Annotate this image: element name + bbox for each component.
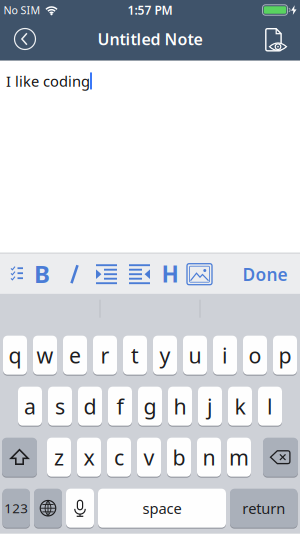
staticText: m: [229, 443, 249, 471]
staticText: space: [142, 498, 181, 518]
staticText: f: [116, 392, 123, 420]
button[interactable]: q: [3, 336, 27, 375]
button[interactable]: c: [107, 438, 131, 477]
staticText: e: [69, 341, 81, 369]
button[interactable]: Outdent: [129, 264, 150, 284]
button[interactable]: n: [197, 438, 221, 477]
button[interactable]: s: [48, 387, 72, 426]
staticText: t: [131, 341, 139, 369]
staticText: x: [83, 443, 94, 471]
staticText: o: [248, 341, 261, 369]
staticText: No SIM: [3, 3, 40, 17]
button[interactable]: Numbers: [2, 489, 30, 528]
button[interactable]: g: [138, 387, 162, 426]
staticText: w: [36, 341, 53, 369]
staticText: 1:57 PM: [127, 2, 172, 18]
staticText: y: [159, 341, 170, 369]
button[interactable]: j: [198, 387, 222, 426]
staticText: i: [222, 341, 228, 369]
staticText: k: [234, 392, 245, 420]
button[interactable]: Space: [98, 489, 226, 528]
staticText: H: [161, 259, 178, 289]
staticText: a: [24, 392, 36, 420]
staticText: c: [114, 443, 124, 471]
button[interactable]: f: [108, 387, 132, 426]
staticText: u: [188, 341, 201, 369]
staticText: return: [242, 498, 285, 518]
button[interactable]: a: [18, 387, 42, 426]
staticText: q: [8, 341, 21, 369]
staticText: v: [143, 443, 154, 471]
button[interactable]: Done: [242, 263, 287, 286]
staticText: s: [55, 392, 65, 420]
button[interactable]: w: [33, 336, 57, 375]
staticText: Done: [242, 263, 287, 286]
button[interactable]: Delete: [263, 438, 298, 477]
button[interactable]: z: [47, 438, 71, 477]
button[interactable]: u: [183, 336, 207, 375]
button[interactable]: Dictate: [66, 489, 94, 528]
button[interactable]: h: [168, 387, 192, 426]
staticText: d: [83, 392, 96, 420]
staticText: r: [100, 341, 109, 369]
button[interactable]: l: [258, 387, 282, 426]
button[interactable]: Back: [14, 28, 35, 49]
button[interactable]: y: [153, 336, 177, 375]
button[interactable]: Italic: [71, 265, 78, 283]
staticText: Untitled Note: [97, 28, 202, 50]
button[interactable]: Return: [230, 489, 297, 528]
button[interactable]: x: [77, 438, 101, 477]
button[interactable]: Preview: [262, 22, 290, 54]
button[interactable]: i: [213, 336, 237, 375]
staticText: j: [207, 392, 213, 420]
button[interactable]: b: [167, 438, 191, 477]
staticText: 123: [4, 499, 28, 517]
staticText: b: [172, 443, 185, 471]
button[interactable]: Bold: [34, 258, 50, 290]
staticText: h: [173, 392, 186, 420]
button[interactable]: Checklist: [11, 266, 23, 282]
staticText: n: [202, 443, 215, 471]
button[interactable]: t: [123, 336, 147, 375]
staticText: z: [54, 443, 64, 471]
staticText: p: [278, 341, 291, 369]
button[interactable]: Shift: [2, 438, 37, 477]
button[interactable]: p: [273, 336, 297, 375]
button[interactable]: o: [243, 336, 267, 375]
button[interactable]: Heading: [161, 259, 178, 289]
staticText: I like coding: [6, 71, 90, 91]
button[interactable]: Indent: [96, 264, 117, 284]
staticText: g: [143, 392, 156, 420]
button[interactable]: m: [227, 438, 251, 477]
button[interactable]: k: [228, 387, 252, 426]
button[interactable]: Insert Image: [187, 264, 212, 285]
button[interactable]: r: [93, 336, 117, 375]
button[interactable]: d: [78, 387, 102, 426]
button[interactable]: e: [63, 336, 87, 375]
staticText: l: [267, 392, 273, 420]
staticText: B: [34, 258, 50, 290]
button[interactable]: Next Keyboard: [34, 489, 62, 528]
button[interactable]: v: [137, 438, 161, 477]
